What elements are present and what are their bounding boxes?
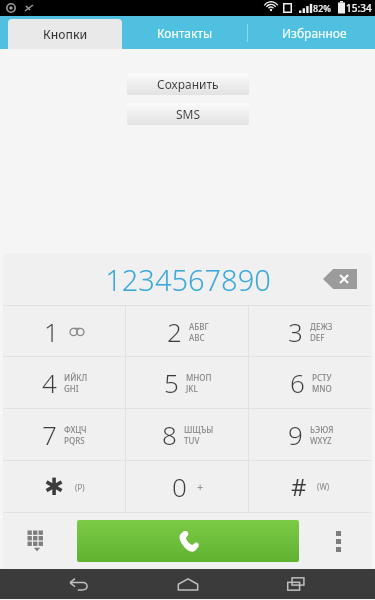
button[interactable]: Hide keypad (15, 519, 59, 563)
button[interactable]: Back (50, 569, 108, 599)
staticText: 5 (164, 365, 179, 400)
staticText: ABC (189, 332, 205, 343)
staticText: 1 (44, 314, 59, 349)
staticText: 0 (172, 469, 187, 504)
button[interactable]: More options (316, 519, 360, 563)
button[interactable]: Избранное (253, 16, 375, 49)
button[interactable]: 7 (3, 409, 126, 460)
staticText: 3 (288, 314, 303, 349)
staticText: АБВГ (189, 321, 209, 332)
staticText: ФХЦЧ (64, 424, 87, 435)
staticText: 9 (288, 417, 303, 452)
button[interactable]: ✱ (3, 461, 126, 512)
staticText: WXYZ (310, 435, 332, 446)
staticText: 7 (42, 417, 57, 452)
button[interactable]: SMS (127, 103, 249, 125)
button[interactable]: # (249, 461, 372, 512)
staticText: DEF (310, 332, 325, 343)
button[interactable]: Home (159, 569, 217, 599)
staticText: GHI (64, 383, 79, 394)
button[interactable]: 3 (249, 306, 372, 356)
staticText: ✱ (44, 473, 65, 501)
staticText: # (291, 470, 307, 503)
staticText: 4 (42, 365, 57, 400)
button[interactable]: 0 (126, 461, 249, 512)
staticText: 6 (290, 365, 305, 400)
button[interactable]: Сохранить (127, 73, 249, 95)
button[interactable]: 5 (126, 357, 249, 408)
staticText: TUV (184, 435, 200, 446)
button[interactable]: 8 (126, 409, 249, 460)
button[interactable]: 9 (249, 409, 372, 460)
staticText: Сохранить (157, 76, 219, 92)
staticText: Контакты (157, 25, 213, 41)
staticText: ЬЭЮЯ (310, 424, 334, 435)
button[interactable]: Контакты (128, 16, 242, 49)
staticText: МНОП (186, 372, 212, 383)
staticText: РСТУ (312, 372, 332, 383)
staticText: SMS (176, 106, 201, 122)
button[interactable]: Backspace (318, 262, 362, 296)
button[interactable]: 4 (3, 357, 126, 408)
staticText: (W) (317, 481, 330, 492)
staticText: 8 (162, 417, 177, 452)
staticText: (P) (75, 482, 85, 493)
button[interactable]: Call (77, 520, 299, 562)
staticText: 82% (313, 2, 331, 14)
staticText: 1234567890 (105, 260, 271, 299)
staticText: ДЕЖЗ (310, 321, 333, 332)
button[interactable]: Recent apps (267, 569, 325, 599)
staticText: ИЙКЛ (64, 372, 88, 383)
staticText: ШЩЪЫ (184, 424, 214, 435)
staticText: + (197, 479, 204, 494)
staticText: MNO (312, 383, 332, 394)
staticText: 15:34 (346, 1, 372, 15)
staticText: JKL (186, 383, 198, 394)
button[interactable]: 6 (249, 357, 372, 408)
button[interactable]: 1 (3, 306, 126, 356)
staticText: PQRS (64, 435, 85, 446)
button[interactable]: Кнопки (8, 19, 122, 49)
staticText: Кнопки (43, 26, 88, 42)
staticText: 2 (167, 314, 182, 349)
staticText: Избранное (282, 25, 347, 41)
button[interactable]: 2 (126, 306, 249, 356)
